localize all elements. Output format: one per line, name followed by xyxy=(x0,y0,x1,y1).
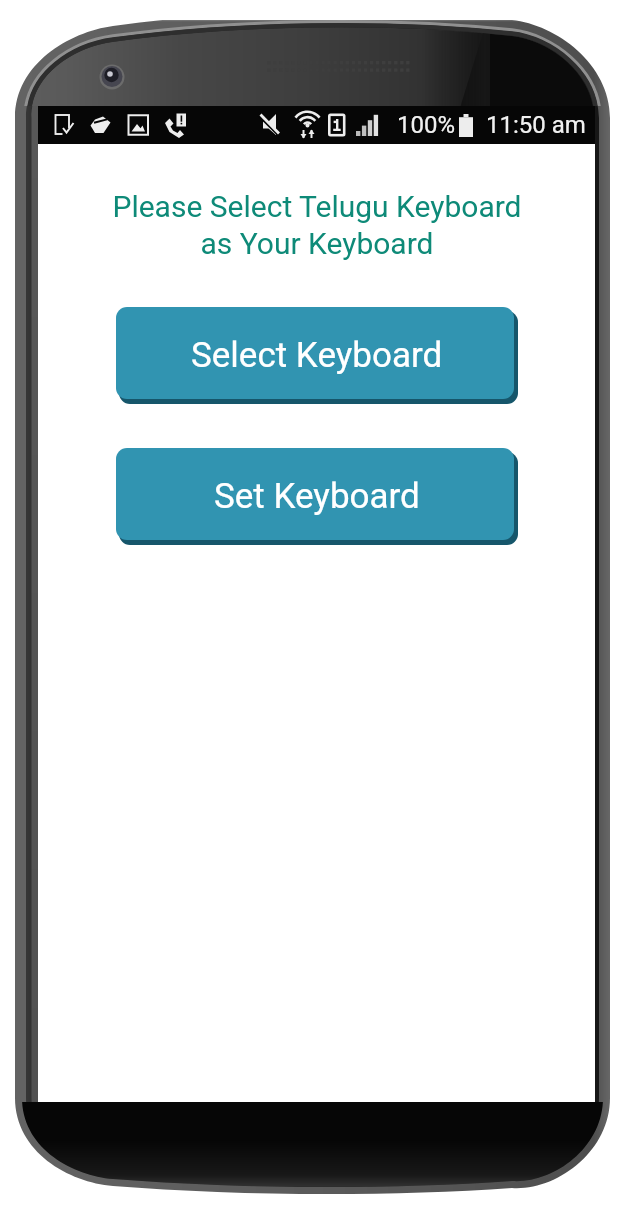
button[interactable]: Set Keyboard xyxy=(116,448,518,545)
staticText: Please Select Telugu Keyboard as Your Ke… xyxy=(112,189,522,262)
button[interactable]: Select Keyboard xyxy=(116,307,518,404)
staticText: 11:50 am xyxy=(486,111,586,139)
staticText: 100% xyxy=(397,111,456,139)
staticText: Select Keyboard xyxy=(191,335,443,376)
staticText: Set Keyboard xyxy=(214,476,420,517)
